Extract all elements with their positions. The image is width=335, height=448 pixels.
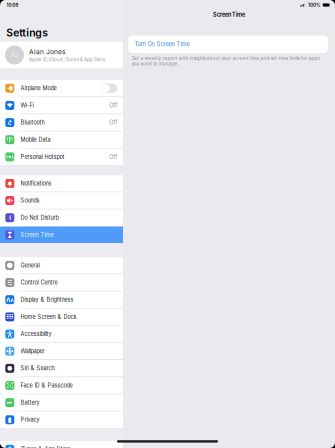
staticText: Off <box>109 153 117 160</box>
button[interactable]: iTunes & App Store <box>0 441 123 448</box>
staticText: Privacy <box>21 416 40 423</box>
staticText: Apple ID, iCloud, iTunes & App Store <box>29 57 106 62</box>
staticText: Turn On Screen Time <box>135 41 190 48</box>
button[interactable]: Accessibility <box>0 326 123 342</box>
staticText: Face ID & Passcode <box>21 382 73 389</box>
staticText: Get a weekly report with insights about … <box>131 56 319 67</box>
staticText: General <box>21 262 40 269</box>
staticText: Display & Brightness <box>21 296 74 303</box>
staticText: Wallpaper <box>21 348 45 354</box>
button[interactable]: Do Not Disturb <box>0 209 123 226</box>
staticText: Bluetooth <box>21 119 45 126</box>
button[interactable]: Wallpaper <box>0 343 123 359</box>
staticText: Battery <box>21 399 40 406</box>
button[interactable]: Face ID & Passcode <box>0 377 123 394</box>
staticText: Alan Jones <box>29 48 66 56</box>
staticText: Accessibility <box>21 331 52 337</box>
staticText: 10:09 <box>6 2 18 8</box>
button[interactable]: Turn On Screen Time <box>128 35 328 53</box>
button[interactable]: Control Centre <box>0 274 123 291</box>
staticText: Screen Time <box>213 11 245 18</box>
button[interactable]: AJ <box>0 41 123 68</box>
button[interactable]: Airplane Mode <box>0 80 123 97</box>
button[interactable]: Notifications <box>0 175 123 192</box>
button[interactable]: General <box>0 257 123 274</box>
button[interactable]: Siri & Search <box>0 360 123 377</box>
staticText: Personal Hotspot <box>21 153 65 160</box>
staticText: Sounds <box>21 197 40 204</box>
staticText: Off <box>109 119 117 126</box>
button[interactable]: Battery <box>0 394 123 411</box>
staticText: Off <box>109 102 117 109</box>
button[interactable]: Home Screen & Dock <box>0 309 123 325</box>
staticText: 100% <box>308 2 321 8</box>
staticText: Do Not Disturb <box>21 214 59 221</box>
staticText: Wi-Fi <box>21 102 34 109</box>
staticText: Airplane Mode <box>21 85 57 92</box>
staticText: Mobile Data <box>21 136 51 143</box>
button[interactable]: Display & Brightness <box>0 291 123 308</box>
button[interactable]: Privacy <box>0 411 123 428</box>
staticText: Notifications <box>21 180 52 187</box>
button[interactable]: Wi-Fi <box>0 97 123 114</box>
staticText: AJ <box>10 51 18 59</box>
button[interactable]: Screen Time <box>0 227 123 243</box>
button[interactable]: Personal Hotspot <box>0 149 123 165</box>
staticText: iTunes & App Store <box>21 446 71 448</box>
button[interactable]: Mobile Data <box>0 131 123 148</box>
staticText: Siri & Search <box>21 365 55 372</box>
staticText: Screen Time <box>21 231 54 238</box>
staticText: Home Screen & Dock <box>21 313 77 320</box>
staticText: Settings <box>6 26 48 39</box>
staticText: Control Centre <box>21 279 58 286</box>
button[interactable]: Bluetooth <box>0 114 123 131</box>
button[interactable]: Sounds <box>0 192 123 209</box>
